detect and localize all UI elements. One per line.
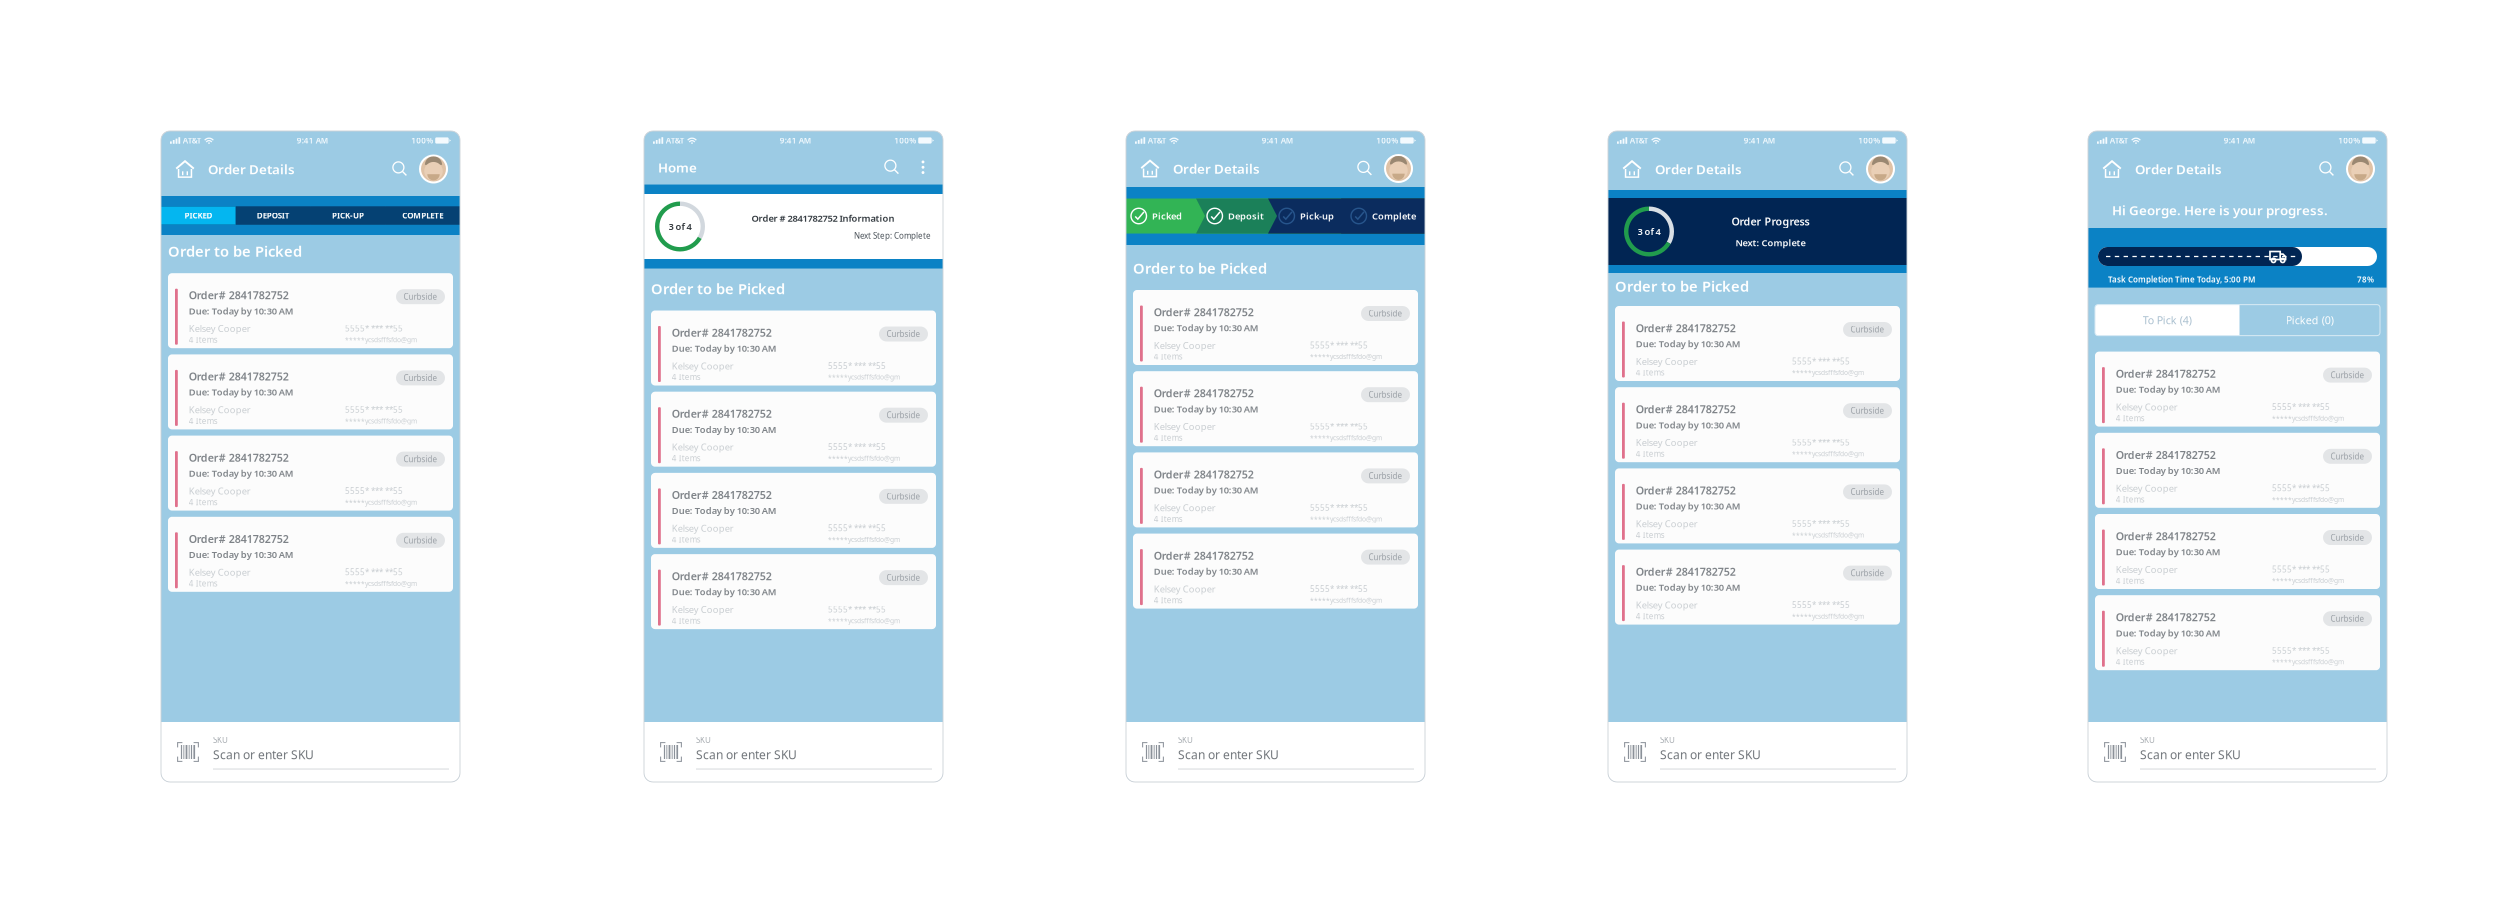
button[interactable]: Order# 2841782752 xyxy=(2095,352,2380,427)
staticText: Scan or enter SKU xyxy=(213,747,314,762)
button[interactable]: Order# 2841782752 xyxy=(2095,595,2380,670)
staticText: Curbside xyxy=(1850,487,1884,497)
staticText: Order # 2841782752 Information xyxy=(751,212,894,224)
staticText: 5555* *** **55 xyxy=(345,486,403,496)
button[interactable]: Order# 2841782752 xyxy=(651,554,936,629)
staticText: 9:41 AM xyxy=(1744,135,1775,146)
staticText: Order# 2841782752 xyxy=(1154,467,1254,481)
staticText: Due: Today by 10:30 AM xyxy=(2116,545,2221,558)
staticText: 4 Items xyxy=(1154,351,1183,362)
button[interactable]: COMPLETE xyxy=(385,206,460,224)
staticText: Curbside xyxy=(886,329,920,339)
staticText: Hi George. Here is your progress. xyxy=(2112,201,2328,219)
button[interactable]: DEPOSIT xyxy=(236,206,311,224)
staticText: Due: Today by 10:30 AM xyxy=(2116,627,2221,639)
button[interactable]: To Pick (4) xyxy=(2095,305,2239,336)
button[interactable]: Home xyxy=(175,159,195,179)
button[interactable]: Home xyxy=(1622,159,1642,179)
button[interactable]: PICK-UP xyxy=(310,206,385,224)
staticText: *****ycsdsfffsfdo@gm xyxy=(345,498,417,507)
button[interactable]: Picked (0) xyxy=(2239,305,2380,336)
staticText: SKU xyxy=(213,734,228,745)
staticText: *****ycsdsfffsfdo@gm xyxy=(345,335,417,344)
button[interactable]: Order# 2841782752 xyxy=(1133,371,1418,446)
staticText: 5555* *** **55 xyxy=(2272,645,2330,656)
staticText: 4 Items xyxy=(189,578,218,589)
staticText: Task Completion Time Today, 5:00 PM xyxy=(2108,274,2255,285)
staticText: Kelsey Cooper xyxy=(2116,644,2178,657)
button[interactable]: Order# 2841782752 xyxy=(168,436,453,511)
staticText: Pick-up xyxy=(1300,210,1334,222)
staticText: Kelsey Cooper xyxy=(2116,401,2178,413)
staticText: Order# 2841782752 xyxy=(189,369,289,383)
button[interactable]: Order# 2841782752 xyxy=(168,517,453,592)
staticText: Deposit xyxy=(1228,210,1264,222)
button[interactable]: More options xyxy=(915,158,931,177)
staticText: SKU xyxy=(1660,734,1675,745)
button[interactable]: Deposit xyxy=(1196,198,1268,233)
button[interactable]: Profile xyxy=(1384,154,1413,183)
staticText: 100% xyxy=(1376,135,1398,146)
staticText: Order to be Picked xyxy=(168,241,302,261)
button[interactable]: Search xyxy=(1836,158,1858,180)
staticText: *****ycsdsfffsfdo@gm xyxy=(1310,352,1382,361)
staticText: 4 Items xyxy=(1636,448,1665,459)
staticText: Order# 2841782752 xyxy=(672,488,772,502)
staticText: 4 Items xyxy=(2116,575,2145,586)
button[interactable]: Search xyxy=(389,158,411,180)
staticText: 5555* *** **55 xyxy=(1792,600,1850,610)
staticText: 5555* *** **55 xyxy=(1310,421,1368,432)
button[interactable]: Profile xyxy=(2346,154,2375,183)
staticText: 3 of 4 xyxy=(1637,225,1660,238)
staticText: 100% xyxy=(411,135,433,146)
staticText: Order# 2841782752 xyxy=(189,450,289,465)
staticText: Curbside xyxy=(1368,552,1402,562)
button[interactable]: Order# 2841782752 xyxy=(168,354,453,429)
staticText: Due: Today by 10:30 AM xyxy=(1636,337,1741,350)
staticText: 4 Items xyxy=(2116,494,2145,505)
button[interactable]: Search xyxy=(881,156,903,178)
staticText: Kelsey Cooper xyxy=(1154,583,1216,595)
staticText: *****ycsdsfffsfdo@gm xyxy=(828,373,900,381)
button[interactable]: Order# 2841782752 xyxy=(1615,306,1900,381)
button[interactable]: Complete xyxy=(1341,198,1425,233)
button[interactable]: Order# 2841782752 xyxy=(1615,550,1900,625)
button[interactable]: Pick-up xyxy=(1268,198,1341,233)
button[interactable]: Order# 2841782752 xyxy=(651,473,936,548)
staticText: 4 Items xyxy=(2116,413,2145,423)
staticText: Order# 2841782752 xyxy=(1154,386,1254,400)
button[interactable]: PICKED xyxy=(161,206,236,224)
button[interactable]: Search xyxy=(1354,157,1376,179)
button[interactable]: Order# 2841782752 xyxy=(1615,387,1900,462)
staticText: Order Details xyxy=(1655,160,1742,178)
staticText: *****ycsdsfffsfdo@gm xyxy=(2272,657,2344,666)
staticText: Due: Today by 10:30 AM xyxy=(189,386,294,398)
staticText: 4 Items xyxy=(672,615,701,626)
button[interactable]: Search xyxy=(2316,158,2338,180)
button[interactable]: Order# 2841782752 xyxy=(168,273,453,348)
button[interactable]: Picked xyxy=(1126,198,1196,233)
button[interactable]: Profile xyxy=(419,154,448,183)
button[interactable]: Order# 2841782752 xyxy=(1133,452,1418,527)
button[interactable]: Order# 2841782752 xyxy=(2095,433,2380,508)
staticText: Order to be Picked xyxy=(651,279,785,298)
button[interactable]: Home xyxy=(2102,159,2122,179)
staticText: Kelsey Cooper xyxy=(672,360,734,372)
staticText: 5555* *** **55 xyxy=(1792,518,1850,529)
staticText: Kelsey Cooper xyxy=(2116,563,2178,575)
button[interactable]: Order# 2841782752 xyxy=(651,310,936,385)
button[interactable]: Profile xyxy=(1866,154,1895,183)
button[interactable]: Order# 2841782752 xyxy=(651,392,936,467)
staticText: Kelsey Cooper xyxy=(672,603,734,616)
staticText: Curbside xyxy=(2330,370,2364,380)
button[interactable]: Order# 2841782752 xyxy=(1133,534,1418,609)
button[interactable]: Home xyxy=(1140,158,1160,178)
button[interactable]: Order# 2841782752 xyxy=(2095,514,2380,589)
button[interactable]: Order# 2841782752 xyxy=(1615,468,1900,543)
staticText: Picked xyxy=(1152,210,1182,222)
button[interactable]: Order# 2841782752 xyxy=(1133,290,1418,365)
staticText: DEPOSIT xyxy=(257,210,290,221)
staticText: *****ycsdsfffsfdo@gm xyxy=(1310,514,1382,523)
staticText: SKU xyxy=(1178,734,1193,745)
staticText: Due: Today by 10:30 AM xyxy=(1154,565,1259,577)
